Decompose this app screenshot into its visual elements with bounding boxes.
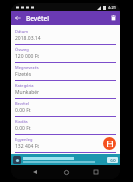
staticText: 0.00 Ft (15, 125, 31, 132)
button[interactable]: Delete (106, 11, 120, 25)
staticText: Megnevezés (15, 65, 39, 70)
button[interactable]: Bevétel (15, 99, 116, 117)
staticText: Munkabér (15, 89, 40, 96)
staticText: Fizetés (15, 71, 32, 78)
staticText: Bevétel (26, 14, 49, 23)
staticText: Kategória (15, 83, 34, 88)
button[interactable]: Back (11, 11, 25, 25)
button[interactable]: Egyenleg (15, 135, 116, 153)
button[interactable]: Kategória (15, 81, 116, 99)
button[interactable]: GO (107, 157, 118, 163)
staticText: Összeg (15, 47, 29, 52)
staticText: 132 404 Ft (15, 143, 40, 150)
button[interactable]: Megnevezés (15, 63, 116, 81)
button[interactable]: Kiadás (15, 117, 116, 135)
staticText: GO (110, 158, 116, 163)
button[interactable]: Back (28, 165, 42, 179)
staticText: 120 000 Ft (15, 53, 40, 60)
staticText: Kiadás (15, 119, 28, 124)
staticText: Bevétel (15, 101, 30, 106)
button[interactable]: GO (11, 154, 120, 165)
button[interactable]: Dátum (15, 27, 116, 45)
staticText: Dátum (15, 29, 29, 34)
staticText: 4:21 (108, 5, 116, 10)
button[interactable]: Home (59, 165, 73, 179)
button[interactable]: Save (103, 137, 116, 150)
staticText: 0.00 Ft (15, 107, 31, 114)
staticText: 2018.03.14 (15, 35, 41, 42)
staticText: Egyenleg (15, 137, 33, 142)
button[interactable]: Recents (89, 165, 103, 179)
button[interactable]: Összeg (15, 45, 116, 63)
